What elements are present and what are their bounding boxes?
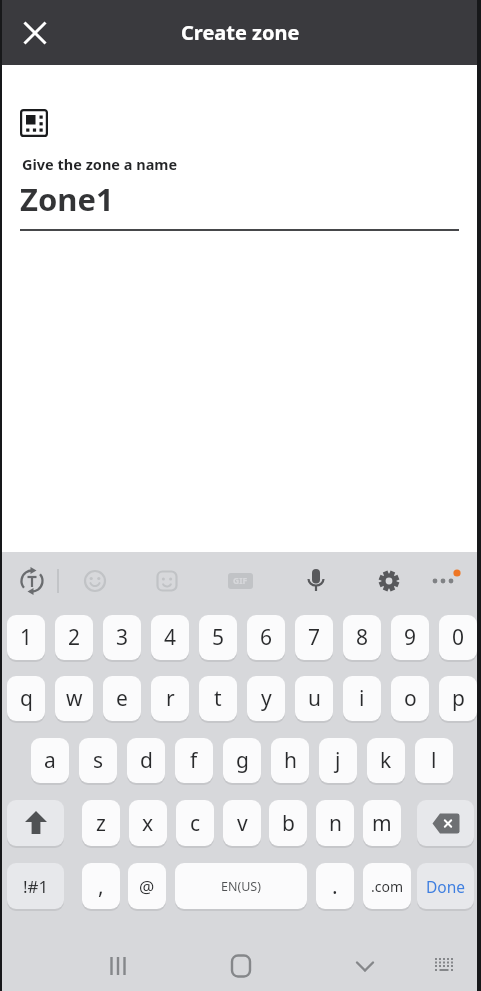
- button[interactable]: [221, 946, 261, 986]
- staticText: 7: [308, 623, 321, 652]
- button[interactable]: .com: [363, 863, 411, 909]
- staticText: i: [359, 684, 365, 713]
- button[interactable]: i: [343, 676, 381, 721]
- staticText: p: [452, 684, 465, 713]
- button[interactable]: [417, 800, 474, 846]
- staticText: z: [96, 809, 106, 838]
- button[interactable]: EN(US): [175, 863, 307, 909]
- button[interactable]: z: [82, 800, 120, 846]
- button[interactable]: [424, 946, 464, 986]
- button[interactable]: 5: [199, 615, 237, 660]
- button[interactable]: 8: [343, 615, 381, 660]
- button[interactable]: y: [247, 676, 285, 721]
- staticText: d: [140, 746, 153, 775]
- button[interactable]: 4: [151, 615, 189, 660]
- staticText: ,: [98, 872, 104, 901]
- staticText: k: [380, 746, 392, 775]
- button[interactable]: 0: [439, 615, 477, 660]
- button[interactable]: q: [7, 676, 45, 721]
- button[interactable]: u: [295, 676, 333, 721]
- button[interactable]: k: [367, 738, 405, 783]
- button[interactable]: 9: [391, 615, 429, 660]
- button[interactable]: 2: [55, 615, 93, 660]
- button[interactable]: [98, 946, 138, 986]
- button[interactable]: d: [127, 738, 165, 783]
- staticText: j: [335, 746, 341, 775]
- button[interactable]: 1: [7, 615, 45, 660]
- button[interactable]: g: [223, 738, 261, 783]
- staticText: f: [190, 746, 198, 775]
- staticText: v: [237, 809, 248, 838]
- button[interactable]: Done: [417, 863, 474, 909]
- staticText: n: [329, 809, 342, 838]
- staticText: h: [284, 746, 297, 775]
- button[interactable]: !#1: [7, 863, 64, 909]
- button[interactable]: c: [176, 800, 214, 846]
- staticText: g: [236, 746, 249, 775]
- staticText: Done: [426, 876, 466, 897]
- staticText: s: [93, 746, 104, 775]
- staticText: 8: [356, 623, 369, 652]
- button[interactable]: [16, 14, 53, 51]
- staticText: q: [20, 684, 33, 713]
- button[interactable]: [345, 946, 385, 986]
- button[interactable]: [296, 561, 336, 601]
- staticText: r: [166, 684, 175, 713]
- staticText: 3: [116, 623, 129, 652]
- staticText: y: [261, 684, 272, 713]
- button[interactable]: f: [175, 738, 213, 783]
- button[interactable]: t: [199, 676, 237, 721]
- button[interactable]: l: [415, 738, 453, 783]
- button[interactable]: n: [316, 800, 354, 846]
- staticText: @: [139, 875, 155, 898]
- button[interactable]: @: [128, 863, 166, 909]
- staticText: a: [44, 746, 56, 775]
- staticText: !#1: [23, 875, 49, 898]
- button[interactable]: [423, 561, 463, 601]
- staticText: Create zone: [181, 19, 300, 46]
- staticText: 2: [68, 623, 81, 652]
- staticText: x: [142, 809, 154, 838]
- button[interactable]: [12, 561, 52, 601]
- staticText: EN(US): [221, 878, 261, 895]
- staticText: w: [66, 684, 83, 713]
- button[interactable]: r: [151, 676, 189, 721]
- button[interactable]: 6: [247, 615, 285, 660]
- staticText: 9: [404, 623, 417, 652]
- button[interactable]: GIF: [220, 561, 260, 601]
- button[interactable]: 3: [103, 615, 141, 660]
- button[interactable]: h: [271, 738, 309, 783]
- button[interactable]: [369, 561, 409, 601]
- staticText: Give the zone a name: [22, 154, 178, 174]
- staticText: 5: [212, 623, 225, 652]
- button[interactable]: [75, 561, 115, 601]
- staticText: c: [190, 809, 201, 838]
- staticText: 0: [452, 623, 465, 652]
- button[interactable]: o: [391, 676, 429, 721]
- button[interactable]: ,: [82, 863, 120, 909]
- staticText: .: [332, 872, 338, 901]
- button[interactable]: w: [55, 676, 93, 721]
- staticText: Zone1: [20, 178, 114, 220]
- staticText: .com: [371, 877, 404, 896]
- staticText: GIF: [233, 575, 248, 587]
- button[interactable]: s: [79, 738, 117, 783]
- button[interactable]: p: [439, 676, 477, 721]
- button[interactable]: x: [129, 800, 167, 846]
- staticText: l: [431, 746, 437, 775]
- button[interactable]: 7: [295, 615, 333, 660]
- staticText: t: [214, 684, 222, 713]
- staticText: o: [404, 684, 417, 713]
- button[interactable]: [7, 800, 64, 846]
- staticText: e: [116, 684, 128, 713]
- button[interactable]: e: [103, 676, 141, 721]
- button[interactable]: [147, 561, 187, 601]
- button[interactable]: v: [223, 800, 261, 846]
- button[interactable]: j: [319, 738, 357, 783]
- button[interactable]: a: [31, 738, 69, 783]
- staticText: m: [372, 809, 392, 838]
- button[interactable]: m: [363, 800, 401, 846]
- button[interactable]: .: [316, 863, 354, 909]
- staticText: 1: [20, 623, 33, 652]
- button[interactable]: b: [269, 800, 307, 846]
